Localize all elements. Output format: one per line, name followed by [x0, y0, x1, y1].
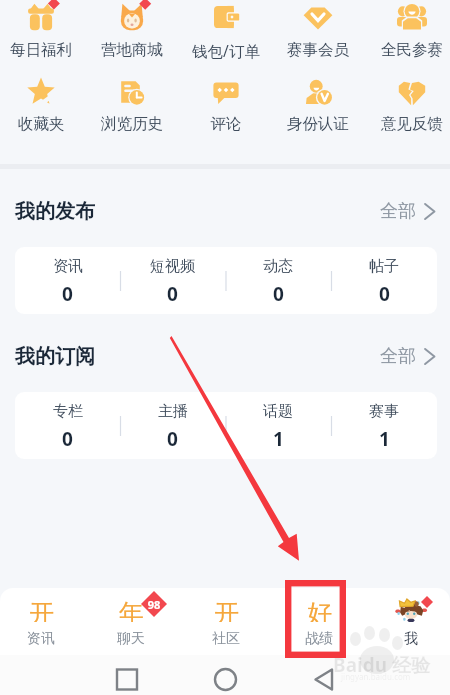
staticText: 动态: [263, 257, 293, 276]
button[interactable]: 钱包/订单: [181, 0, 271, 66]
staticText: 资讯: [27, 630, 55, 648]
staticText: 专栏: [53, 402, 83, 421]
staticText: 0: [379, 281, 390, 307]
staticText: 收藏夹: [0, 114, 86, 134]
staticText: 意见反馈: [367, 114, 450, 134]
staticText: 年: [119, 598, 144, 622]
staticText: 好: [307, 598, 332, 622]
staticText: 赛事: [369, 402, 399, 421]
staticText: 帖子: [369, 257, 399, 276]
button[interactable]: 好: [274, 588, 364, 655]
button[interactable]: 动态: [225, 247, 331, 314]
staticText: 营地商城: [87, 40, 177, 60]
button[interactable]: 开: [0, 588, 86, 655]
staticText: 每日福利: [0, 40, 86, 60]
staticText: 1: [379, 426, 390, 452]
button[interactable]: 营地商城: [87, 0, 177, 66]
staticText: 我的发布: [15, 199, 95, 224]
button[interactable]: 帖子: [331, 247, 437, 314]
other: New notification: [421, 596, 433, 608]
staticText: 主播: [158, 402, 188, 421]
staticText: 0: [62, 281, 73, 307]
button[interactable]: 评论: [181, 69, 271, 141]
staticText: 98: [141, 597, 167, 612]
button[interactable]: 每日福利: [0, 0, 86, 66]
staticText: 开: [29, 598, 54, 622]
staticText: 身份认证: [273, 114, 363, 134]
button[interactable]: 开: [181, 588, 271, 655]
button[interactable]: 资讯: [15, 247, 120, 314]
staticText: 1: [273, 426, 284, 452]
button[interactable]: 短视频: [120, 247, 225, 314]
staticText: 聊天: [117, 630, 145, 648]
button[interactable]: 赛事会员: [273, 0, 363, 66]
staticText: 话题: [263, 402, 293, 421]
button[interactable]: 赛事: [331, 392, 437, 459]
button[interactable]: 我: [366, 588, 450, 655]
staticText: 开: [214, 598, 239, 622]
button[interactable]: 意见反馈: [367, 69, 450, 141]
staticText: 全民参赛: [367, 40, 450, 60]
staticText: 资讯: [53, 257, 83, 276]
button[interactable]: 话题: [225, 392, 331, 459]
staticText: 0: [167, 426, 178, 452]
button[interactable]: 我的发布: [15, 198, 435, 224]
button[interactable]: 浏览历史: [87, 69, 177, 141]
button[interactable]: 我的订阅: [15, 343, 435, 369]
staticText: 0: [62, 426, 73, 452]
staticText: 短视频: [150, 257, 195, 276]
staticText: jingyan.baidu.com: [341, 671, 411, 682]
staticText: 浏览历史: [87, 114, 177, 134]
staticText: 我: [404, 630, 418, 648]
staticText: 评论: [181, 114, 271, 134]
button[interactable]: 收藏夹: [0, 69, 86, 141]
staticText: 战绩: [305, 630, 333, 648]
staticText: 全部: [380, 345, 416, 368]
staticText: 钱包/订单: [181, 40, 271, 61]
button[interactable]: 身份认证: [273, 69, 363, 141]
button[interactable]: 主播: [120, 392, 225, 459]
other: 战绩 tab highlighted: [285, 580, 346, 658]
staticText: 赛事会员: [273, 40, 363, 60]
staticText: 社区: [212, 630, 240, 648]
button[interactable]: 专栏: [15, 392, 120, 459]
staticText: 0: [167, 281, 178, 307]
staticText: 我的订阅: [15, 344, 95, 369]
button[interactable]: 年: [86, 588, 176, 655]
button[interactable]: 全民参赛: [367, 0, 450, 66]
staticText: 全部: [380, 200, 416, 223]
staticText: 0: [273, 281, 284, 307]
staticText: Baidu 经验: [333, 652, 430, 678]
